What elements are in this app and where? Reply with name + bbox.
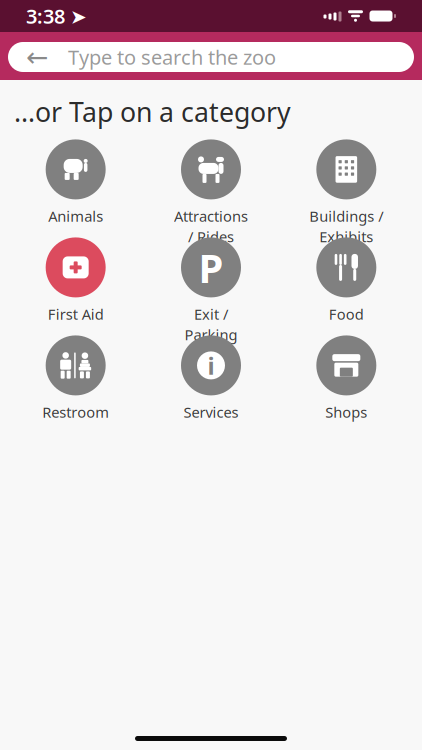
button[interactable]: Buildings / Exhibits (279, 139, 414, 233)
staticText: Exhibits (319, 227, 373, 246)
staticText: First Aid (48, 304, 104, 324)
staticText: ← (26, 42, 48, 72)
staticText: / Rides (188, 227, 234, 246)
staticText: Attractions (174, 206, 248, 226)
button[interactable]: Exit / Parking (143, 237, 279, 331)
staticText: Food (329, 304, 364, 324)
staticText: Exit / (194, 304, 228, 324)
staticText: P (198, 241, 223, 294)
staticText: Animals (48, 206, 103, 226)
staticText: Parking (184, 325, 237, 344)
button[interactable]: Type to search the zoo (8, 42, 414, 72)
button[interactable]: Services (143, 335, 279, 429)
staticText: Shops (325, 402, 367, 422)
staticText: Buildings / (309, 206, 383, 226)
button[interactable]: Attractions / Rides (143, 139, 279, 233)
button[interactable]: Food (279, 237, 414, 331)
staticText: Services (183, 402, 238, 422)
button[interactable]: Restroom (8, 335, 143, 429)
staticText: Type to search the zoo (68, 44, 276, 70)
button[interactable]: Shops (279, 335, 414, 429)
staticText: …or Tap on a category (14, 94, 291, 129)
button[interactable]: Animals (8, 139, 143, 233)
staticText: Restroom (42, 402, 109, 422)
staticText: i (207, 349, 214, 381)
button[interactable]: First Aid (8, 237, 143, 331)
staticText: 3:38 ➤ (26, 3, 87, 29)
